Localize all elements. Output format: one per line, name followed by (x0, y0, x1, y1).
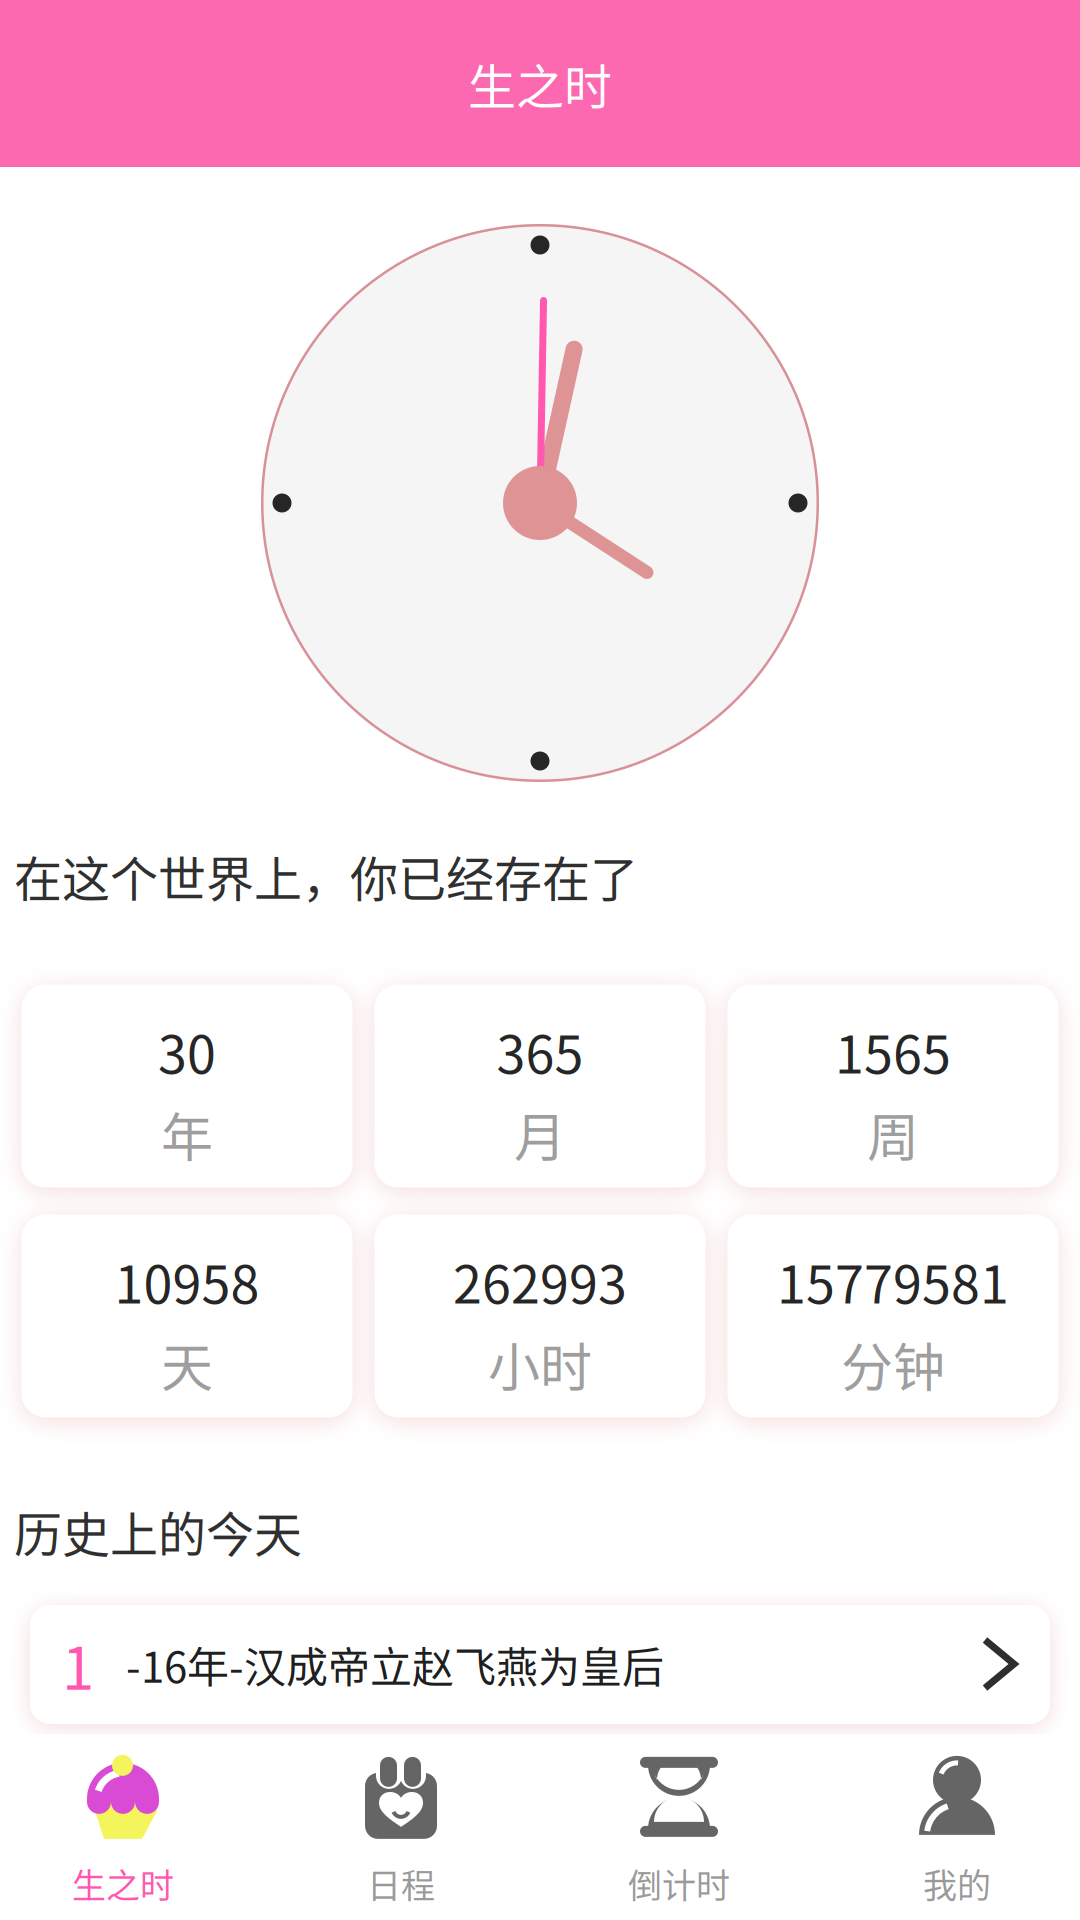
staticText: 小时 (488, 1326, 592, 1402)
button[interactable]: 生之时 (0, 1734, 262, 1920)
staticText: 历史上的今天 (14, 1496, 302, 1566)
staticText: 日程 (367, 1859, 435, 1908)
staticText: 15779581 (777, 1243, 1009, 1318)
staticText: 262993 (453, 1243, 627, 1318)
button[interactable]: 倒计时 (540, 1734, 818, 1920)
staticText: 1 (62, 1622, 94, 1706)
button[interactable]: 我的 (818, 1734, 1080, 1920)
staticText: 10958 (114, 1243, 259, 1318)
staticText: 365 (496, 1013, 583, 1088)
staticText: 年 (161, 1096, 213, 1172)
staticText: 生之时 (72, 1859, 174, 1908)
staticText: 生之时 (468, 49, 612, 118)
staticText: 周 (867, 1096, 919, 1172)
button[interactable]: 1 (30, 1605, 1050, 1724)
staticText: 月 (514, 1096, 566, 1172)
staticText: 分钟 (841, 1326, 945, 1402)
staticText: 天 (161, 1326, 213, 1402)
button[interactable]: 日程 (262, 1734, 540, 1920)
staticText: 在这个世界上，你已经存在了 (14, 841, 638, 910)
staticText: -16年-汉成帝立赵飞燕为皇后 (126, 1634, 664, 1695)
staticText: 1565 (835, 1013, 951, 1088)
staticText: 倒计时 (628, 1859, 730, 1908)
staticText: 30 (158, 1013, 216, 1088)
staticText: 我的 (923, 1859, 991, 1908)
